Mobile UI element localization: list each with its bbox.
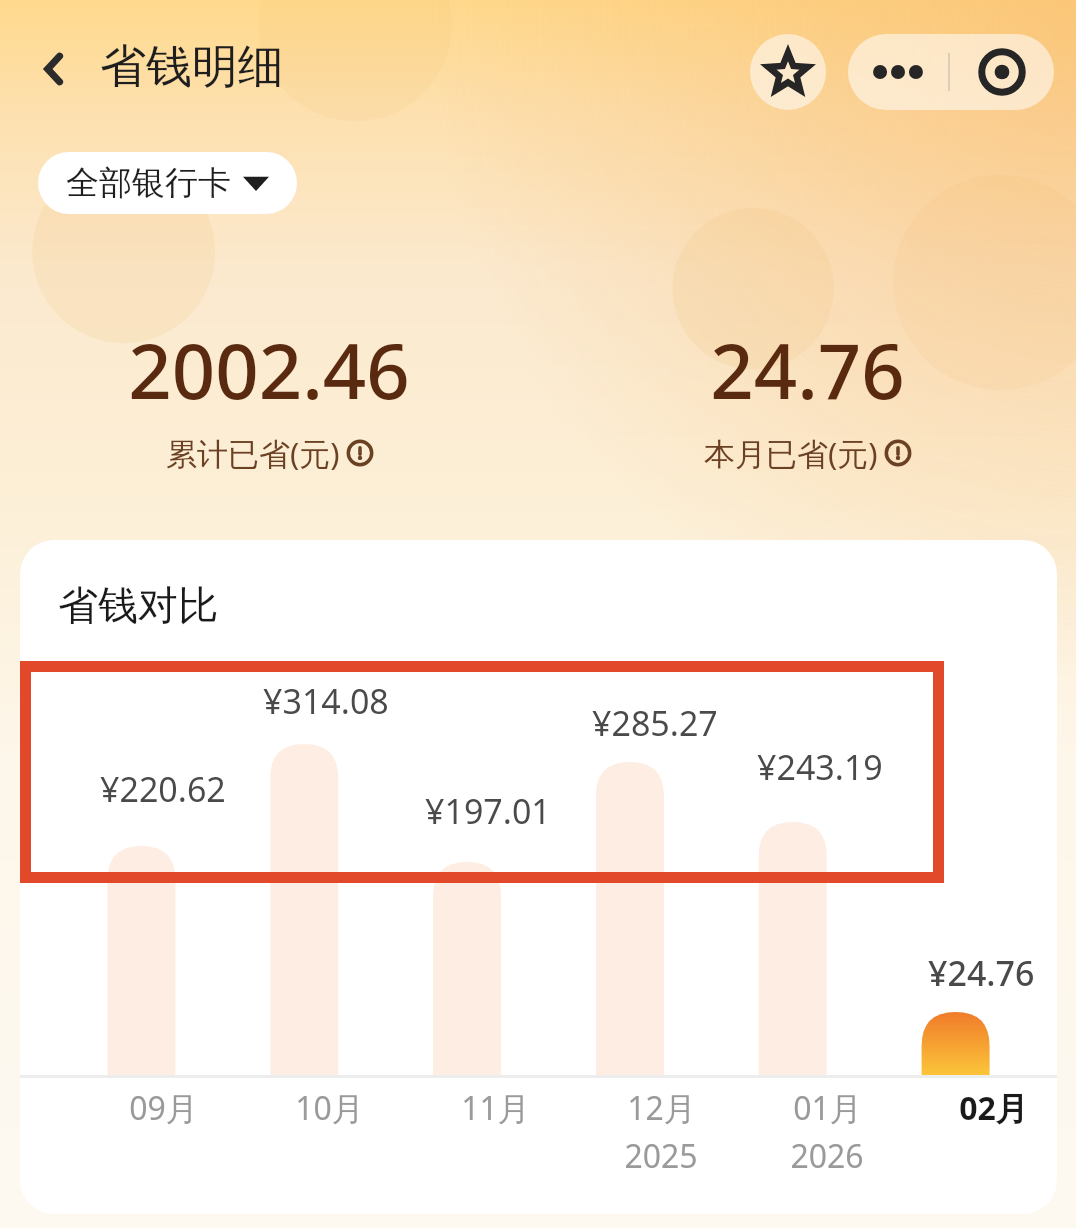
staticText: ¥220.62 [100, 766, 226, 812]
button[interactable]: 全部银行卡 [38, 152, 297, 214]
staticText: ¥24.76 [928, 950, 1035, 996]
staticText: 01月 [793, 1086, 862, 1130]
button[interactable]: Close [950, 34, 1054, 110]
staticText: 累计已省(元) [166, 432, 340, 474]
staticText: 省钱明细 [100, 38, 284, 96]
staticText: 全部银行卡 [66, 162, 231, 204]
staticText: 12月 [627, 1086, 696, 1130]
staticText: 11月 [461, 1086, 530, 1130]
button[interactable]: More options [848, 34, 948, 110]
staticText: 02月 [959, 1086, 1028, 1130]
staticText: 10月 [295, 1086, 364, 1130]
button[interactable]: Favourite [750, 34, 826, 110]
staticText: 省钱对比 [58, 580, 218, 630]
staticText: 2026 [790, 1134, 864, 1178]
staticText: 09月 [129, 1086, 198, 1130]
button[interactable]: 24.76 [538, 318, 1076, 474]
staticText: 2025 [624, 1134, 698, 1178]
button[interactable]: Back [14, 28, 96, 110]
button[interactable]: 2002.46 [0, 318, 538, 474]
staticText: 24.76 [710, 318, 905, 422]
staticText: ¥197.01 [425, 788, 551, 834]
staticText: ¥285.27 [592, 700, 718, 746]
staticText: 2002.46 [128, 318, 410, 422]
staticText: ¥314.08 [263, 678, 389, 724]
staticText: ¥243.19 [757, 744, 883, 790]
staticText: 本月已省(元) [704, 432, 878, 474]
